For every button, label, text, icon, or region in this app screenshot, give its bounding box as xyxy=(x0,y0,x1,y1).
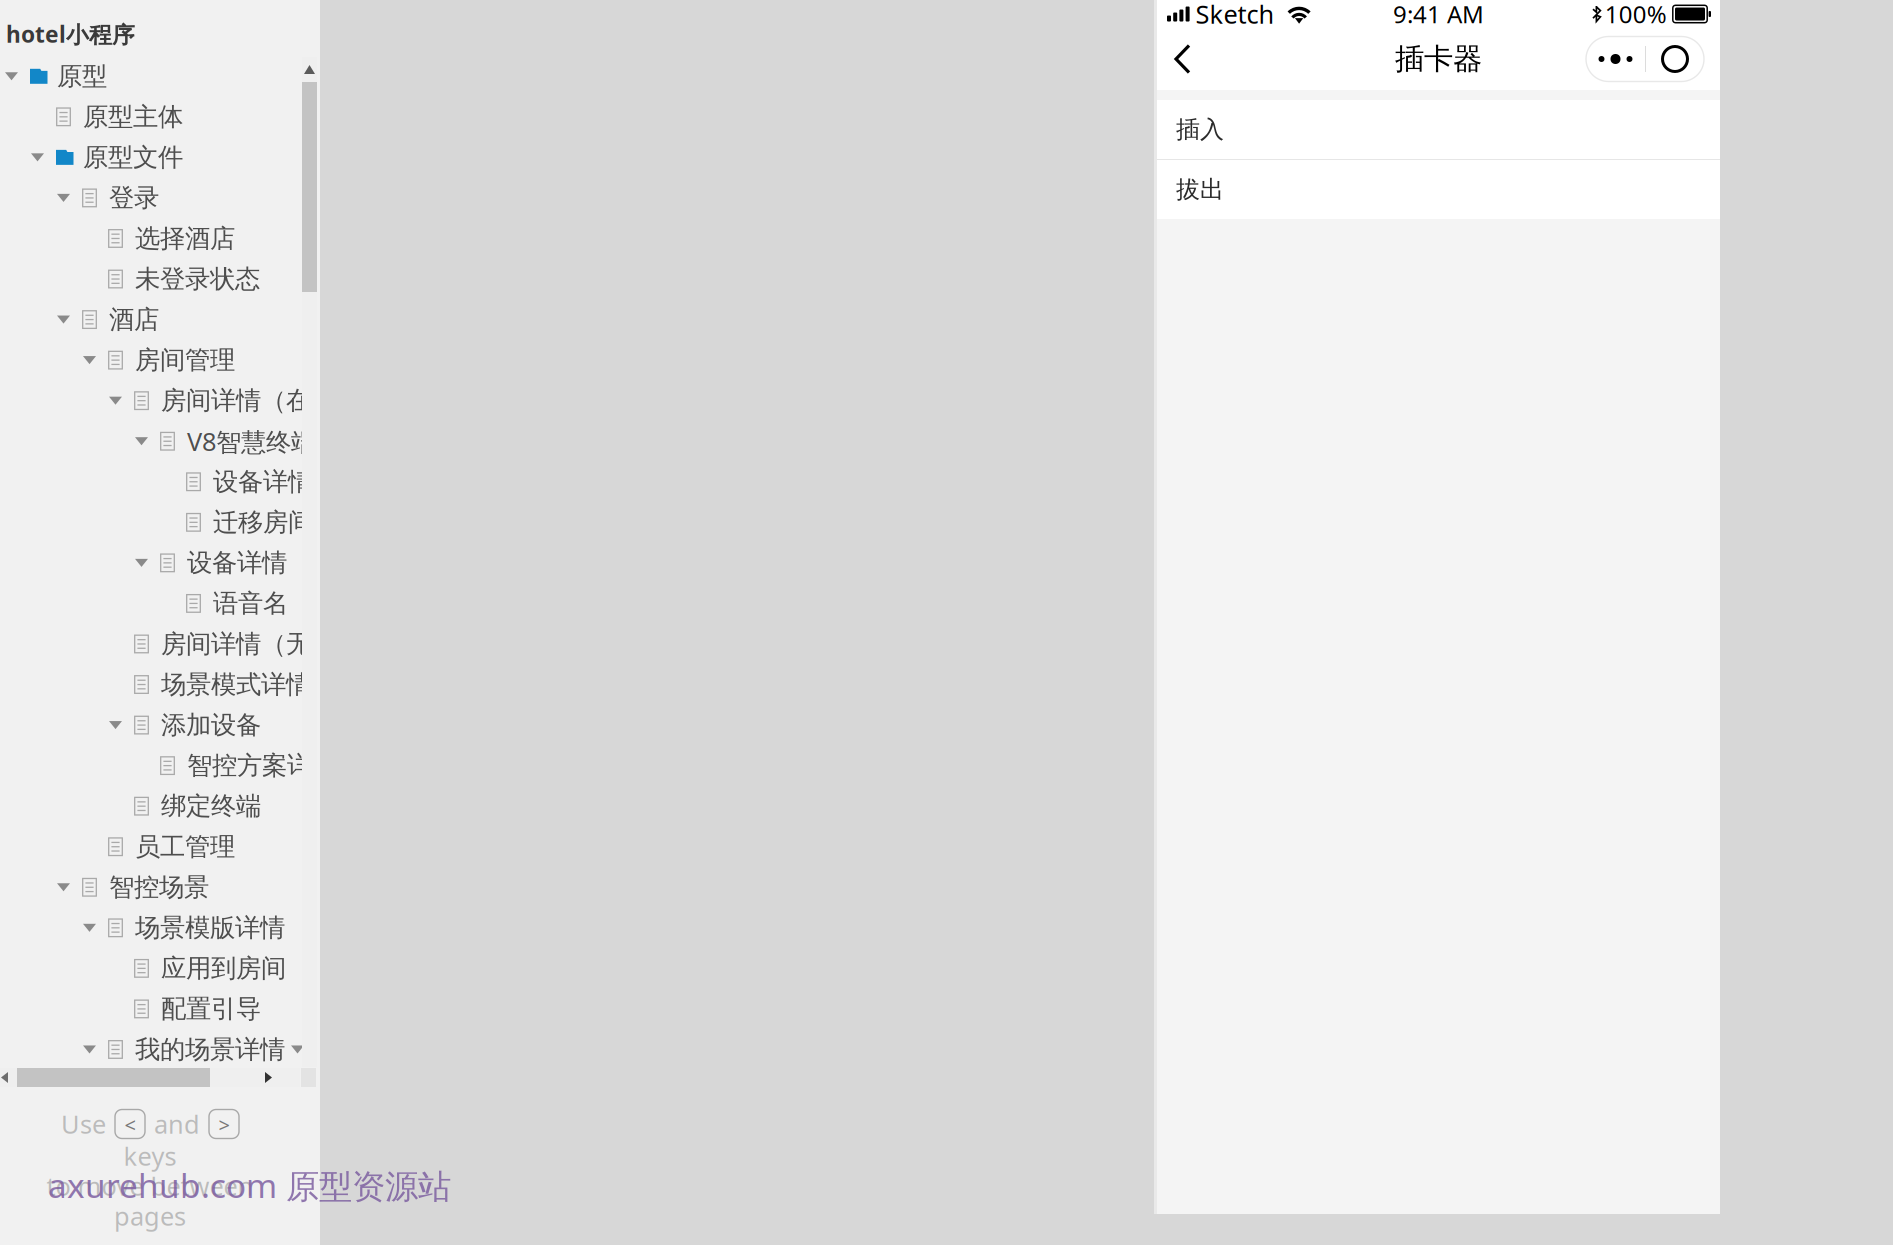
staticText: 场景模式详情 xyxy=(161,669,311,700)
button[interactable]: 房间详情（在线 xyxy=(0,380,304,421)
button[interactable]: 智控方案详情 xyxy=(0,745,304,786)
button[interactable]: 我的场景详情 xyxy=(0,1029,304,1070)
staticText: 选择酒店 xyxy=(135,223,235,254)
staticText: axurehub.com 原型资源站 xyxy=(48,1163,451,1207)
staticText: pages xyxy=(114,1199,186,1233)
staticText: 智控方案详情 xyxy=(187,750,337,781)
button[interactable]: 酒店 xyxy=(0,299,304,340)
button[interactable]: 迁移房间 xyxy=(0,502,304,542)
staticText: 迁移房间 xyxy=(213,507,313,538)
button[interactable]: 房间详情（无设 xyxy=(0,624,304,664)
button[interactable]: 未登录状态 xyxy=(0,259,304,299)
button[interactable]: 拔出 xyxy=(1157,160,1720,219)
button[interactable]: 更多 xyxy=(1586,36,1704,81)
staticText: 配置引导 xyxy=(161,993,261,1024)
staticText: 绑定终端 xyxy=(161,791,261,822)
staticText: 未登录状态 xyxy=(135,263,260,295)
staticText: 员工管理 xyxy=(135,831,235,862)
button[interactable]: 原型 xyxy=(0,56,304,96)
button[interactable]: 原型文件 xyxy=(0,137,304,178)
staticText: 酒店 xyxy=(109,304,159,335)
button[interactable]: 原型主体 xyxy=(0,96,304,137)
button[interactable]: 插入 xyxy=(1157,100,1720,159)
button[interactable]: 返回 xyxy=(1174,28,1226,90)
staticText: 拔出 xyxy=(1176,175,1224,204)
staticText: keys xyxy=(123,1139,176,1173)
button[interactable]: 场景模式详情 xyxy=(0,664,304,705)
staticText: Sketch xyxy=(1196,0,1275,31)
button[interactable]: 选择酒店 xyxy=(0,218,304,259)
staticText: Use xyxy=(61,1107,106,1141)
button[interactable]: 员工管理 xyxy=(0,826,304,867)
button[interactable]: 登录 xyxy=(0,178,304,218)
staticText: 我的场景详情 xyxy=(135,1034,285,1065)
button[interactable]: 语音名（ xyxy=(0,583,304,624)
staticText: 插入 xyxy=(1176,115,1224,144)
button[interactable]: 场景模版详情 xyxy=(0,907,304,948)
button[interactable]: 添加设备 xyxy=(0,705,304,745)
staticText: 原型主体 xyxy=(83,101,183,132)
staticText: 100% xyxy=(1605,0,1667,30)
staticText: 9:41 AM xyxy=(1393,0,1484,30)
staticText: hotel小程序 xyxy=(6,19,135,49)
staticText: 设备详情 xyxy=(213,466,313,497)
staticText: 场景模版详情 xyxy=(135,912,285,943)
staticText: 添加设备 xyxy=(161,709,261,741)
button[interactable]: 智控场景 xyxy=(0,867,304,907)
staticText: to move between xyxy=(46,1169,253,1203)
staticText: 设备详情 xyxy=(187,547,287,578)
button[interactable]: 设备详情 xyxy=(0,543,304,583)
staticText: 原型文件 xyxy=(83,142,183,173)
button[interactable]: 应用到房间 xyxy=(0,948,304,989)
staticText: < xyxy=(124,1111,135,1138)
staticText: V8智慧终端 xyxy=(187,424,316,458)
staticText: 插卡器 xyxy=(1395,41,1482,77)
staticText: 房间详情（在线 xyxy=(161,385,336,416)
button[interactable]: 绑定终端 xyxy=(0,786,304,826)
button[interactable]: V8智慧终端 xyxy=(0,421,304,461)
staticText: 登录 xyxy=(109,182,159,213)
staticText: 智控场景 xyxy=(109,872,209,903)
staticText: 应用到房间 xyxy=(161,953,286,984)
button[interactable]: 设备详情 xyxy=(0,461,304,502)
staticText: 语音名（ xyxy=(213,588,313,619)
button[interactable]: 配置引导 xyxy=(0,989,304,1029)
staticText: 原型 xyxy=(57,61,107,92)
staticText: and xyxy=(154,1107,200,1141)
staticText: 房间管理 xyxy=(135,345,235,376)
staticText: > xyxy=(218,1111,229,1138)
staticText: 房间详情（无设 xyxy=(161,628,336,659)
button[interactable]: 房间管理 xyxy=(0,340,304,380)
